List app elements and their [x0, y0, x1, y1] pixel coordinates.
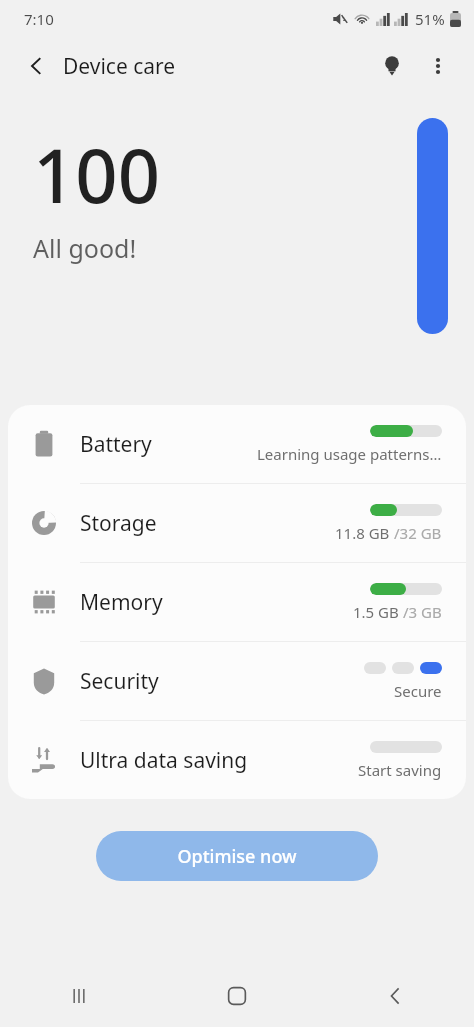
staticText: 11.8 GB: [335, 523, 394, 543]
staticText: Ultra data saving: [80, 746, 248, 775]
staticText: 1.5 GB: [353, 602, 403, 622]
button[interactable]: Back: [316, 965, 474, 1027]
button[interactable]: Security: [8, 642, 466, 720]
staticText: Secure: [394, 681, 442, 701]
staticText: 51%: [415, 9, 445, 29]
staticText: 100: [33, 124, 160, 225]
staticText: Storage: [80, 509, 157, 538]
staticText: Learning usage patterns…: [257, 444, 442, 464]
button[interactable]: Memory: [8, 563, 466, 641]
staticText: Battery: [80, 430, 152, 459]
staticText: Optimise now: [177, 844, 297, 869]
button[interactable]: Optimise now: [96, 831, 378, 881]
button[interactable]: More options: [416, 44, 460, 88]
button[interactable]: Ultra data saving: [8, 721, 466, 799]
staticText: Start saving: [358, 760, 442, 780]
button[interactable]: Tips: [370, 44, 414, 88]
button[interactable]: Recents: [0, 965, 158, 1027]
staticText: /3 GB: [403, 602, 442, 622]
button[interactable]: Home: [158, 965, 316, 1027]
staticText: /32 GB: [394, 523, 442, 543]
staticText: Memory: [80, 588, 163, 617]
button[interactable]: Battery: [8, 405, 466, 483]
staticText: All good!: [33, 231, 137, 265]
button[interactable]: Storage: [8, 484, 466, 562]
staticText: 7:10: [24, 9, 54, 29]
staticText: Security: [80, 667, 159, 696]
staticText: Device care: [63, 52, 176, 81]
button[interactable]: Back: [14, 44, 58, 88]
